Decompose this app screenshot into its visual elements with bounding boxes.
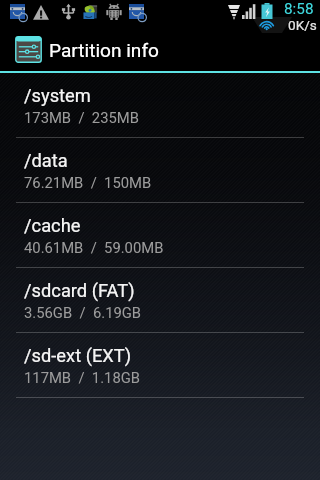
staticText: /data: [24, 150, 68, 171]
button[interactable]: /data: [0, 138, 320, 203]
staticText: Partition info: [49, 39, 159, 61]
staticText: /sdcard (FAT): [24, 280, 135, 301]
staticText: /sd-ext (EXT): [24, 345, 132, 366]
button[interactable]: /sd-ext (EXT): [0, 333, 320, 398]
button[interactable]: /cache: [0, 203, 320, 268]
staticText: /cache: [24, 215, 81, 236]
staticText: 76.21MB / 150MB: [24, 174, 152, 191]
staticText: 40.61MB / 59.00MB: [24, 239, 164, 256]
staticText: 8:58: [284, 0, 314, 18]
button[interactable]: /system: [0, 73, 320, 138]
staticText: /system: [24, 85, 91, 106]
staticText: 173MB / 235MB: [24, 109, 139, 126]
staticText: 3.56GB / 6.19GB: [24, 304, 142, 321]
staticText: 117MB / 1.18GB: [24, 369, 141, 386]
button[interactable]: /sdcard (FAT): [0, 268, 320, 333]
staticText: 0K/s: [288, 17, 317, 33]
